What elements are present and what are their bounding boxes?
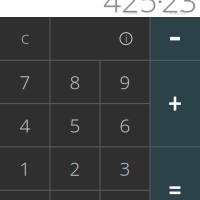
staticText: 9 — [119, 70, 130, 94]
button[interactable]: 1 — [0, 147, 50, 190]
button[interactable]: Minus — [150, 17, 200, 60]
staticText: · — [156, 0, 164, 21]
button[interactable]: 3 — [100, 147, 150, 190]
button[interactable]: 8 — [50, 60, 100, 104]
staticText: 1 — [19, 156, 30, 181]
button[interactable]: Equals — [150, 147, 200, 200]
button[interactable]: 9 — [100, 60, 150, 104]
staticText: 5 — [69, 113, 80, 138]
button[interactable]: 2 — [50, 147, 100, 190]
staticText: 7 — [19, 70, 30, 94]
button[interactable] — [100, 190, 150, 200]
button[interactable]: 7 — [0, 60, 50, 104]
button[interactable]: Info — [50, 17, 150, 60]
staticText: MINUTES — [168, 10, 185, 16]
button[interactable]: 5 — [50, 104, 100, 147]
staticText: C — [21, 30, 29, 47]
button[interactable]: 4 — [0, 104, 50, 147]
staticText: 2 — [69, 156, 80, 181]
staticText: 4 — [19, 113, 30, 138]
staticText: i — [125, 32, 127, 46]
staticText: 23 — [161, 0, 197, 21]
button[interactable]: C — [0, 17, 50, 60]
staticText: 425 — [103, 0, 157, 21]
staticText: 8 — [69, 70, 80, 94]
button[interactable]: . — [50, 190, 100, 200]
staticText: HOURS — [124, 10, 137, 16]
staticText: 3 — [119, 156, 130, 181]
button[interactable]: Plus — [150, 60, 200, 147]
button[interactable]: 0 — [0, 190, 50, 200]
staticText: 6 — [119, 113, 130, 138]
button[interactable]: 6 — [100, 104, 150, 147]
